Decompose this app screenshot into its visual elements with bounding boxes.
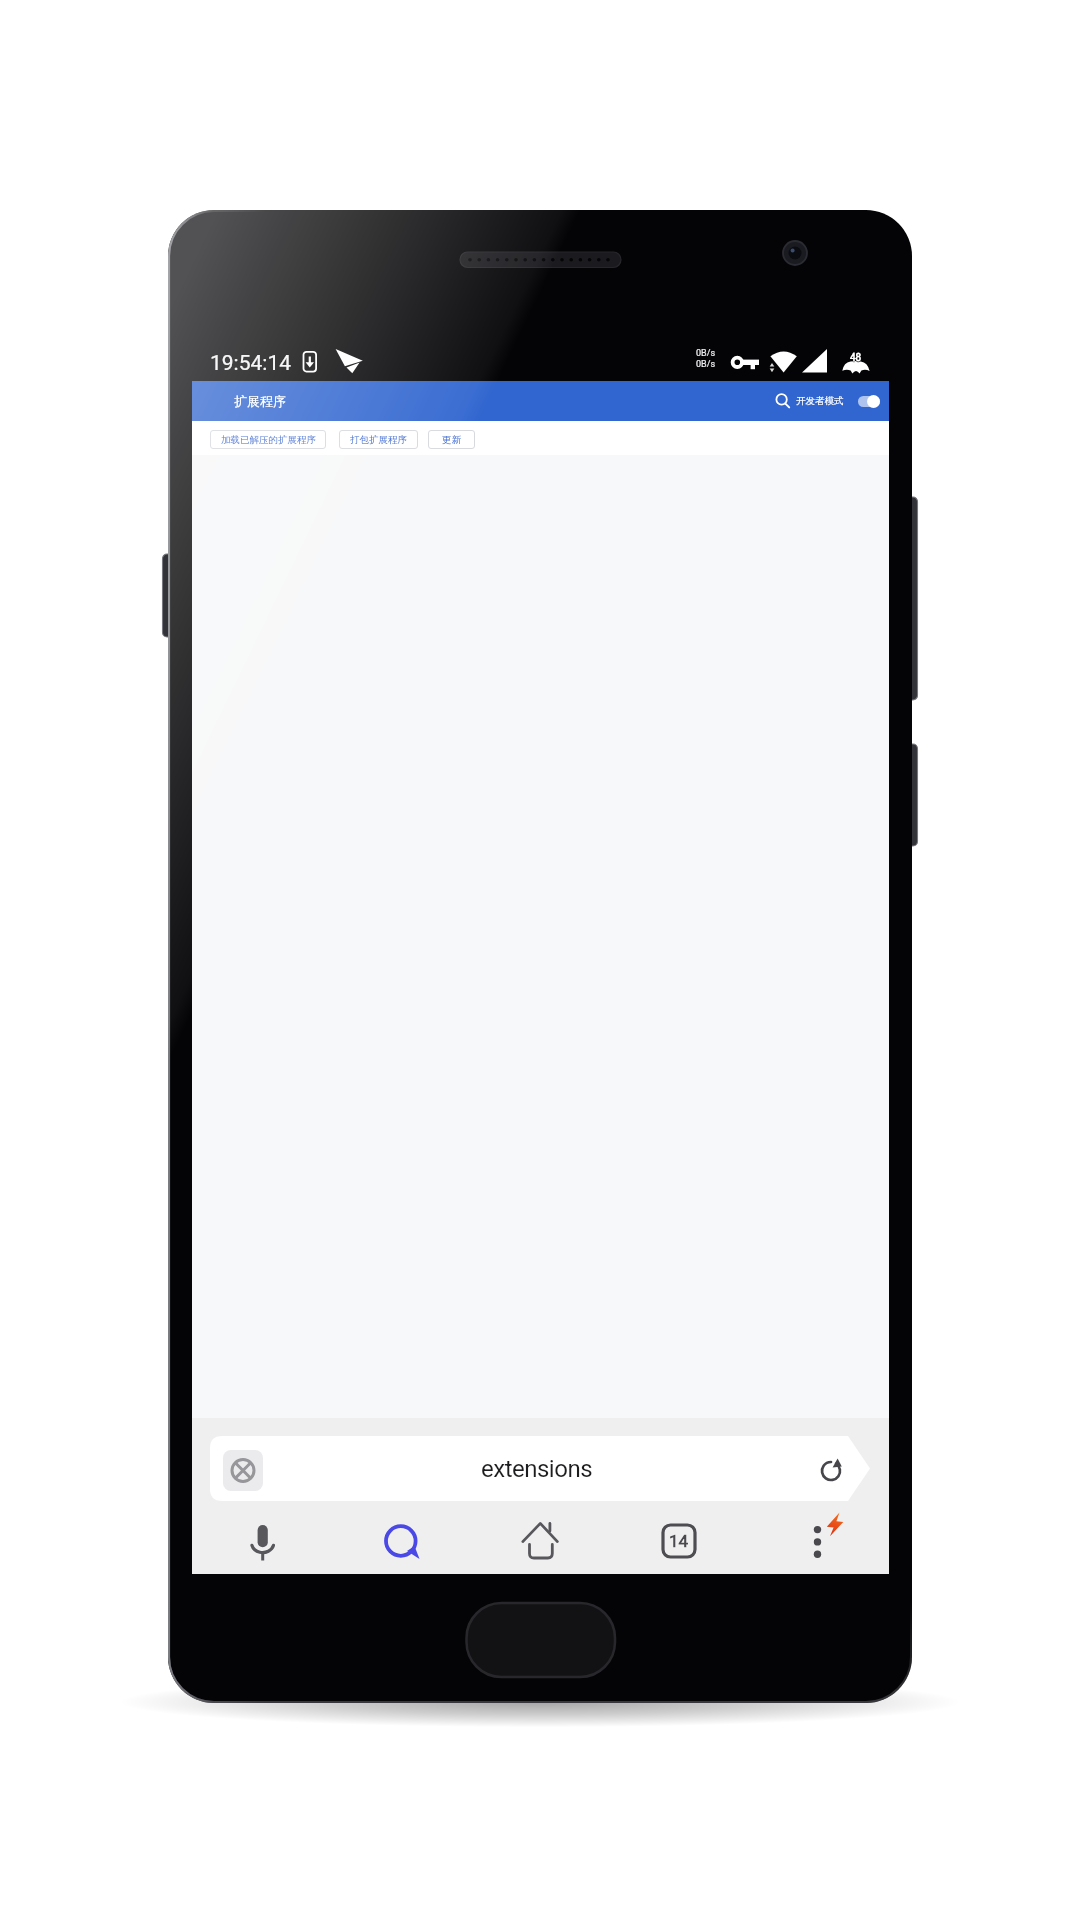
staticText: 48 xyxy=(850,353,862,364)
staticText: 扩展程序 xyxy=(234,393,286,408)
button[interactable] xyxy=(649,1511,709,1571)
staticText: 14 xyxy=(669,1531,689,1551)
staticText: 0B/s xyxy=(696,359,716,369)
staticText: 打包扩展程序 xyxy=(350,434,407,446)
staticText: 0B/s xyxy=(696,348,716,358)
staticText: 48 xyxy=(851,352,863,363)
button[interactable] xyxy=(510,1511,570,1571)
button[interactable] xyxy=(371,1511,431,1571)
staticText: 48 xyxy=(849,352,861,363)
button[interactable] xyxy=(233,1511,293,1571)
button[interactable] xyxy=(858,396,880,407)
button[interactable] xyxy=(772,390,792,410)
button[interactable]: 更新 xyxy=(428,430,475,449)
staticText: 开发者模式 xyxy=(796,395,844,407)
staticText: 48 xyxy=(850,352,862,363)
staticText: 更新 xyxy=(442,434,461,446)
button[interactable]: 打包扩展程序 xyxy=(339,430,418,449)
button[interactable]: 加载已解压的扩展程序 xyxy=(210,430,326,449)
staticText: extensions xyxy=(481,1455,593,1483)
button[interactable] xyxy=(787,1511,847,1571)
staticText: 48 xyxy=(850,351,862,362)
button[interactable] xyxy=(210,1436,870,1501)
staticText: 加载已解压的扩展程序 xyxy=(221,434,316,446)
staticText: 19:54:14 xyxy=(210,351,291,373)
